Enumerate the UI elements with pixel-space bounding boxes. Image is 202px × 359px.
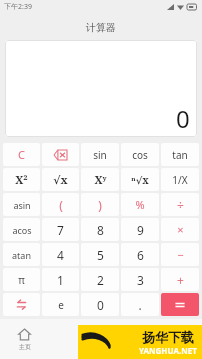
button[interactable]: ÷ <box>161 193 199 216</box>
staticText: X² <box>15 172 28 187</box>
button[interactable]: 3 <box>121 268 159 291</box>
button[interactable]: 6 <box>121 243 159 266</box>
staticText: sin <box>93 148 107 162</box>
button[interactable]: 4 <box>42 243 79 266</box>
button[interactable]: − <box>161 243 199 266</box>
staticText: 9 <box>137 222 144 238</box>
staticText: 主页 <box>19 343 31 351</box>
button[interactable]: 5 <box>81 243 119 266</box>
staticText: + <box>177 272 184 288</box>
button[interactable]: ) <box>81 193 119 216</box>
button[interactable]: √x <box>42 168 79 191</box>
staticText: C <box>18 147 25 162</box>
button[interactable]: C <box>3 143 40 166</box>
button[interactable]: 9 <box>121 218 159 241</box>
staticText: acos <box>12 224 32 236</box>
button[interactable]: + <box>161 268 199 291</box>
button[interactable]: atan <box>3 243 40 266</box>
staticText: e <box>58 298 64 312</box>
button[interactable]: 8 <box>81 218 119 241</box>
staticText: 扬华下载 <box>142 329 194 345</box>
staticText: 7 <box>57 222 64 238</box>
button[interactable]: × <box>161 218 199 241</box>
button[interactable]: 主页 <box>18 328 31 351</box>
staticText: 计算器 <box>86 21 116 34</box>
staticText: 1 <box>57 272 64 288</box>
staticText: . <box>138 297 142 313</box>
staticText: 0 <box>176 102 190 135</box>
staticText: π <box>18 273 25 287</box>
staticText: tan <box>172 148 188 162</box>
staticText: 6 <box>137 247 144 263</box>
button[interactable]: e <box>42 293 79 316</box>
button[interactable] <box>161 293 199 316</box>
button[interactable]: 7 <box>42 218 79 241</box>
staticText: % <box>135 197 145 212</box>
button[interactable]: Swap <box>3 293 40 316</box>
staticText: − <box>177 247 184 262</box>
button[interactable]: % <box>121 193 159 216</box>
staticText: asin <box>13 199 31 211</box>
button[interactable]: 1 <box>42 268 79 291</box>
staticText: √x <box>53 172 68 187</box>
button[interactable]: tan <box>161 143 199 166</box>
button[interactable]: 2 <box>81 268 119 291</box>
button[interactable]: 1/X <box>161 168 199 191</box>
button[interactable]: cos <box>121 143 159 166</box>
staticText: cos <box>132 148 148 162</box>
button[interactable]: Xʸ <box>81 168 119 191</box>
button[interactable]: X² <box>3 168 40 191</box>
staticText: 0 <box>97 297 104 313</box>
staticText: 4 <box>57 247 64 263</box>
button[interactable]: ( <box>42 193 79 216</box>
staticText: ⁿ√x <box>131 173 149 187</box>
button[interactable]: . <box>121 293 159 316</box>
button[interactable]: sin <box>81 143 119 166</box>
staticText: 3 <box>137 272 144 288</box>
staticText: 1/X <box>172 173 188 187</box>
staticText: ÷ <box>177 197 184 213</box>
staticText: × <box>177 222 184 237</box>
button[interactable]: π <box>3 268 40 291</box>
staticText: YANGHUA.NET <box>139 345 197 356</box>
staticText: 2 <box>97 272 104 288</box>
button[interactable]: acos <box>3 218 40 241</box>
staticText: 5 <box>97 247 104 263</box>
button[interactable]: 0 <box>81 293 119 316</box>
staticText: atan <box>12 249 31 261</box>
staticText: 8 <box>97 222 104 238</box>
staticText: Xʸ <box>94 172 107 187</box>
button[interactable]: ⁿ√x <box>121 168 159 191</box>
button[interactable]: asin <box>3 193 40 216</box>
staticText: 下午2:39 <box>4 2 32 12</box>
staticText: ( <box>59 197 63 213</box>
staticText: ) <box>98 197 102 213</box>
button[interactable]: Backspace <box>42 143 79 166</box>
